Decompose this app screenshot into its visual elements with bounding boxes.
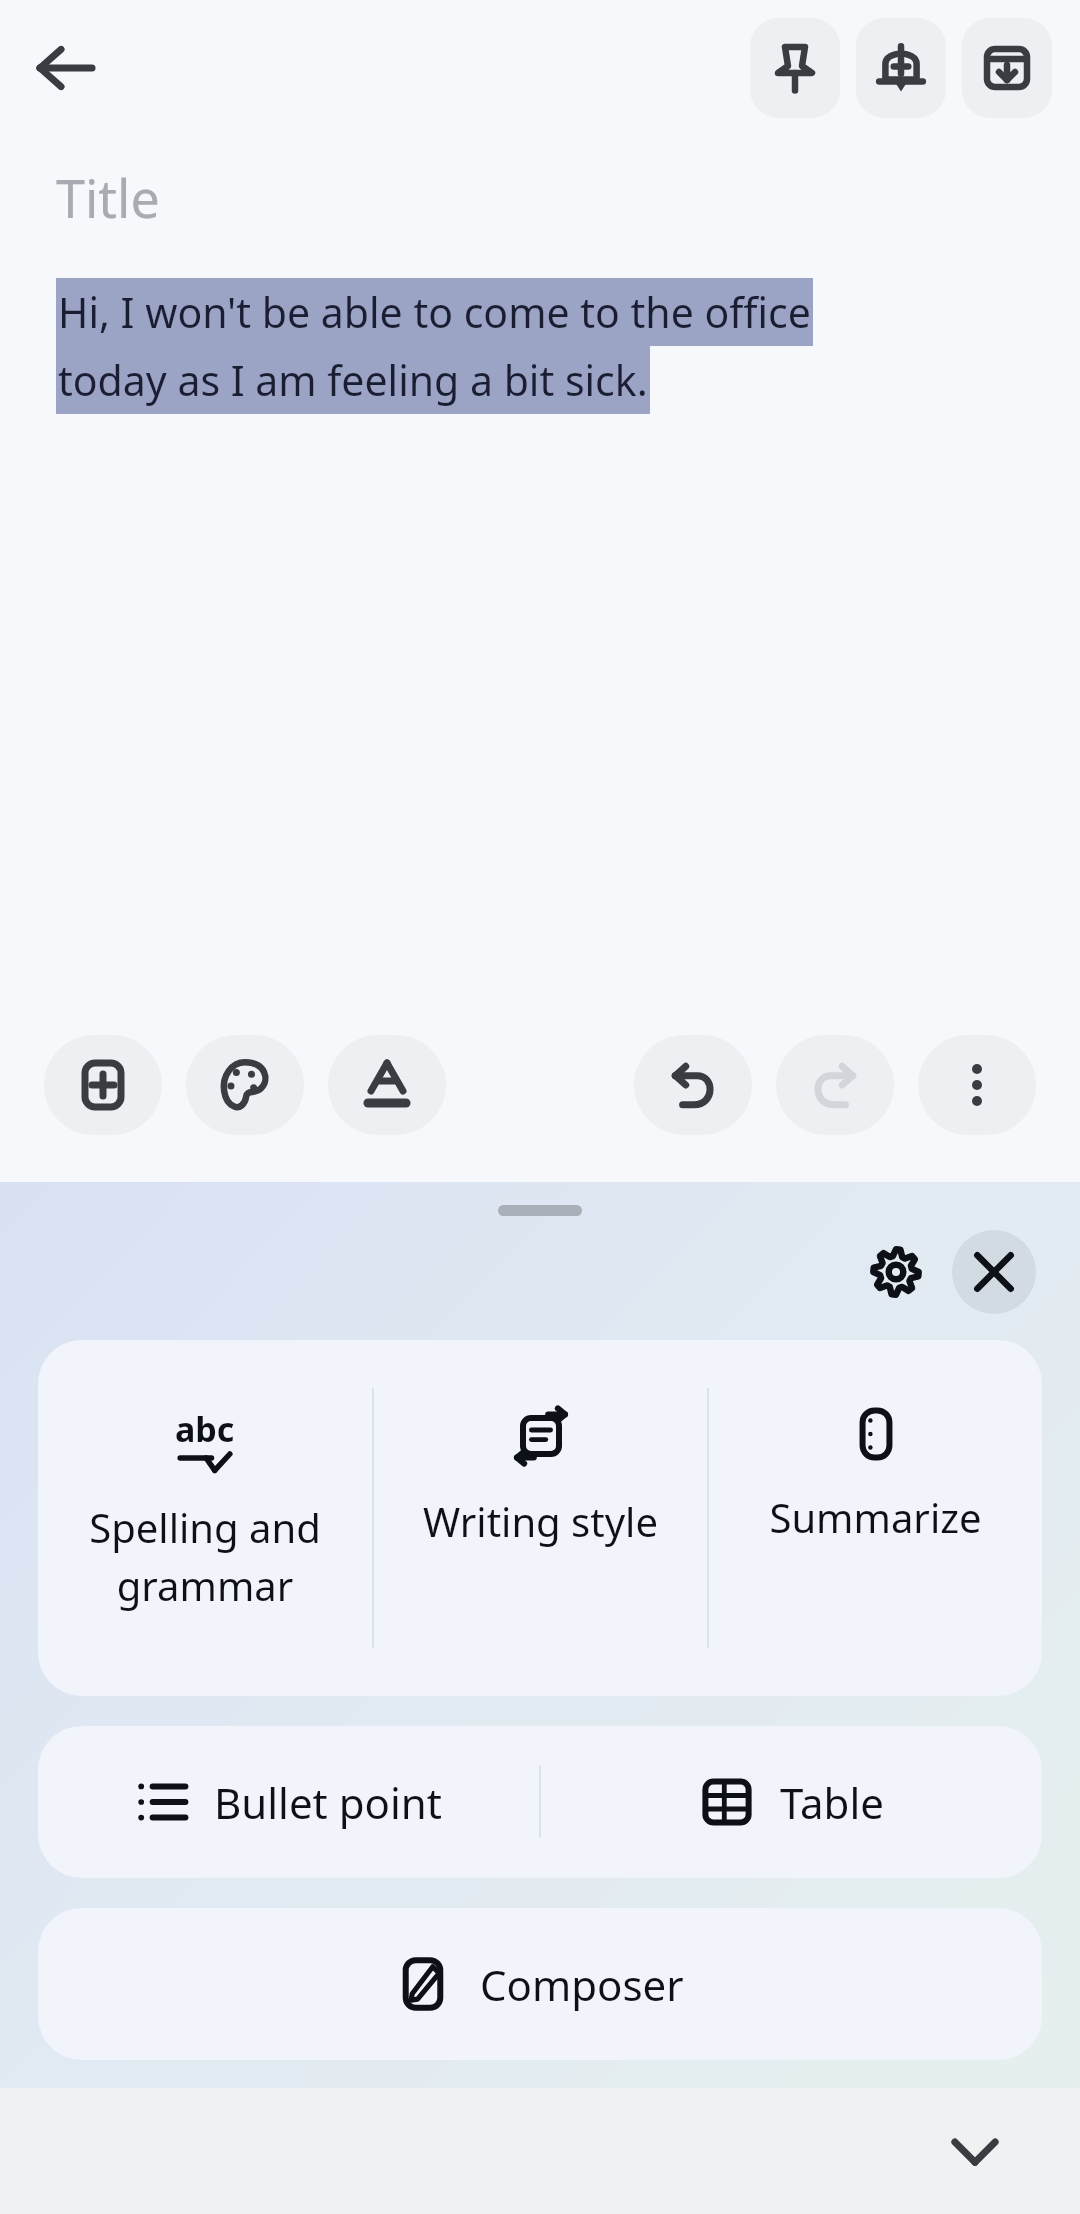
staticText: Composer xyxy=(480,1956,684,2013)
button[interactable]: Pin xyxy=(750,18,840,118)
button[interactable]: Text formatting xyxy=(328,1035,446,1135)
staticText: Writing style xyxy=(423,1494,658,1548)
staticText: today as I am feeling a bit sick. xyxy=(58,352,648,408)
button[interactable]: Redo xyxy=(776,1035,894,1135)
staticText: Table xyxy=(780,1774,884,1831)
button[interactable]: Composer xyxy=(38,1908,1042,2060)
button[interactable]: Add reminder xyxy=(856,18,946,118)
button[interactable]: Settings xyxy=(854,1230,938,1314)
button[interactable]: Table xyxy=(541,1726,1042,1878)
button[interactable]: Undo xyxy=(634,1035,752,1135)
button[interactable]: Close xyxy=(952,1230,1036,1314)
staticText: Bullet point xyxy=(214,1774,442,1831)
button[interactable]: Title xyxy=(56,135,1080,260)
button[interactable]: Back xyxy=(28,30,104,106)
staticText: Spelling and grammar xyxy=(89,1500,321,1612)
button[interactable]: Hide keyboard xyxy=(930,2106,1020,2196)
button[interactable]: Writing style xyxy=(374,1340,707,1696)
button[interactable]: abc xyxy=(38,1340,372,1696)
button[interactable]: Add content xyxy=(44,1035,162,1135)
staticText: Title xyxy=(56,162,160,233)
staticText: Summarize xyxy=(769,1490,982,1544)
button[interactable]: Archive xyxy=(962,18,1052,118)
button[interactable]: Summarize xyxy=(709,1340,1042,1696)
button[interactable]: More options xyxy=(918,1035,1036,1135)
button[interactable]: Background colour xyxy=(186,1035,304,1135)
staticText: abc xyxy=(175,1406,235,1452)
button[interactable]: Bullet point xyxy=(38,1726,539,1878)
staticText: Hi, I won't be able to come to the offic… xyxy=(58,284,811,340)
